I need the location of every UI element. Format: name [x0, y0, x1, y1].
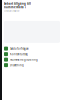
button[interactable]: Saldoförfrågan — [4, 46, 60, 51]
staticText: Insättning — [10, 63, 24, 67]
staticText: Nummerregistrering — [10, 58, 38, 61]
button[interactable]: Insättning — [4, 62, 60, 68]
staticText: Kontantuttag — [10, 52, 28, 56]
staticText: Enbart tillgång till nummerdata i — [4, 2, 31, 9]
button[interactable]: Nummerregistrering — [4, 57, 60, 62]
staticText: Saldoförfrågan — [10, 47, 29, 50]
staticText: kombinationsmöjligheter — [4, 10, 20, 12]
button[interactable]: Kontantuttag — [4, 51, 60, 57]
